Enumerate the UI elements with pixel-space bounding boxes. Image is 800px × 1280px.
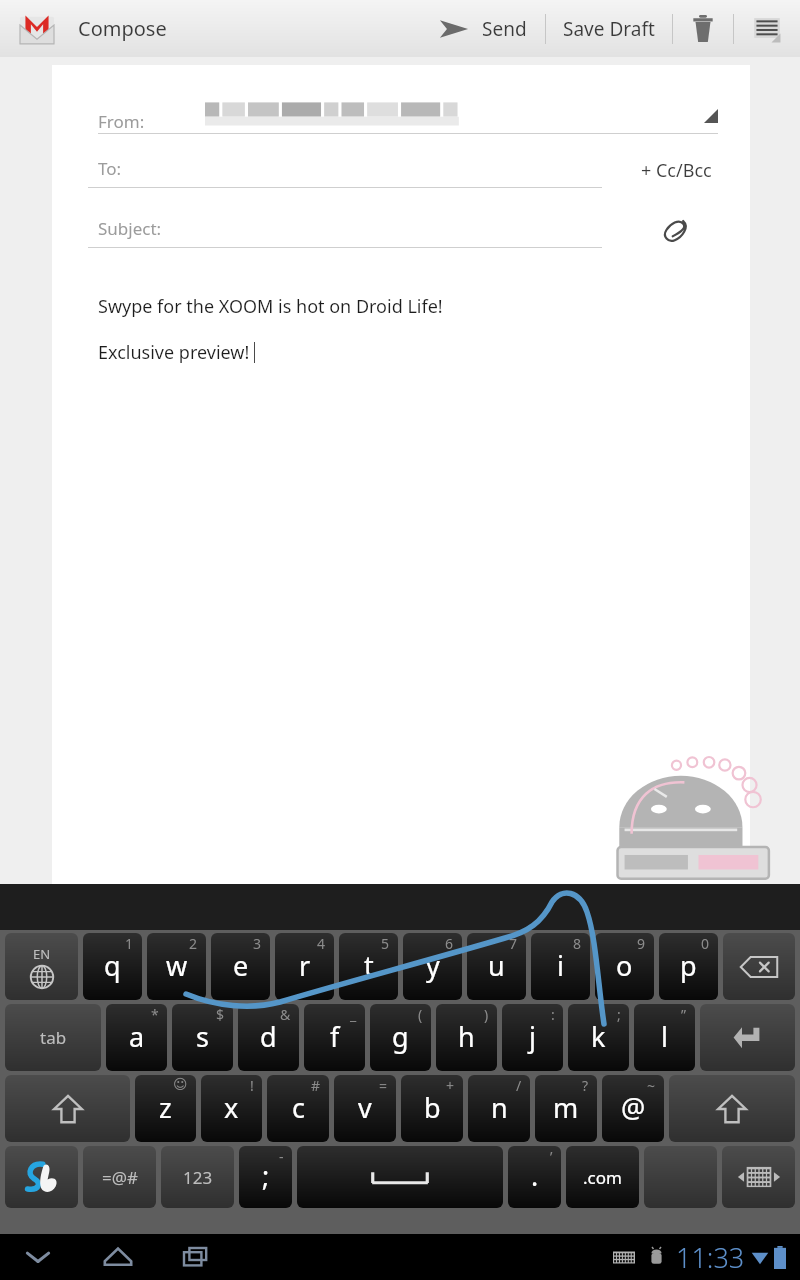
- staticText: Save Draft: [563, 16, 655, 42]
- staticText: a: [129, 1018, 145, 1055]
- staticText: 11:33: [676, 1239, 745, 1276]
- button[interactable]: ?: [535, 1075, 597, 1142]
- button[interactable]: More options: [734, 0, 800, 57]
- staticText: Send: [482, 16, 527, 42]
- staticText: _: [350, 1005, 357, 1024]
- button[interactable]: 2: [147, 933, 206, 1000]
- staticText: f: [330, 1018, 340, 1055]
- button[interactable]: Language: [5, 933, 78, 1000]
- button[interactable]: Hide keyboard: [722, 1146, 795, 1208]
- button[interactable]: Space: [297, 1146, 503, 1208]
- staticText: g: [392, 1018, 409, 1055]
- staticText: ;: [617, 1005, 621, 1024]
- button[interactable]: To:: [88, 157, 602, 188]
- button[interactable]: [644, 1146, 717, 1208]
- button[interactable]: /: [468, 1075, 530, 1142]
- staticText: ?: [582, 1076, 589, 1095]
- button[interactable]: Send: [424, 0, 545, 57]
- button[interactable]: Shift: [5, 1075, 130, 1142]
- button[interactable]: 0: [659, 933, 718, 1000]
- staticText: ~: [647, 1076, 656, 1095]
- staticText: o: [616, 947, 633, 984]
- button[interactable]: 8: [531, 933, 590, 1000]
- button[interactable]: ): [436, 1004, 497, 1071]
- button[interactable]: Discard draft: [673, 0, 733, 57]
- staticText: y: [426, 947, 440, 984]
- button[interactable]: 4: [275, 933, 334, 1000]
- button[interactable]: =@#: [83, 1146, 156, 1208]
- button[interactable]: Backspace: [723, 933, 795, 1000]
- staticText: z: [159, 1089, 172, 1126]
- button[interactable]: .com: [566, 1146, 639, 1208]
- button[interactable]: 7: [467, 933, 526, 1000]
- button[interactable]: ☺: [135, 1075, 196, 1142]
- button[interactable]: 3: [211, 933, 270, 1000]
- staticText: j: [529, 1018, 536, 1055]
- button[interactable]: Enter: [700, 1004, 795, 1071]
- staticText: q: [104, 947, 121, 984]
- staticText: s: [196, 1018, 209, 1055]
- staticText: e: [233, 947, 249, 984]
- staticText: =@#: [102, 1166, 138, 1189]
- button[interactable]: Back: [10, 1234, 66, 1280]
- staticText: ”: [681, 1005, 687, 1024]
- staticText: Subject:: [98, 217, 162, 240]
- button[interactable]: -: [239, 1146, 292, 1208]
- staticText: ☺: [173, 1076, 188, 1092]
- button[interactable]: 6: [403, 933, 462, 1000]
- button[interactable]: :: [502, 1004, 563, 1071]
- button[interactable]: $: [172, 1004, 233, 1071]
- button[interactable]: #: [267, 1075, 329, 1142]
- button[interactable]: 5: [339, 933, 398, 1000]
- staticText: =: [379, 1076, 388, 1095]
- button[interactable]: *: [106, 1004, 167, 1071]
- button[interactable]: Home: [90, 1234, 146, 1280]
- staticText: 5: [381, 934, 390, 953]
- staticText: r: [299, 947, 311, 984]
- button[interactable]: tab: [5, 1004, 101, 1071]
- staticText: m: [553, 1089, 579, 1126]
- button[interactable]: Recent apps: [168, 1234, 224, 1280]
- button[interactable]: ~: [602, 1075, 664, 1142]
- staticText: :: [551, 1005, 555, 1024]
- button[interactable]: Subject:: [88, 217, 602, 248]
- staticText: t: [364, 947, 374, 984]
- staticText: k: [591, 1018, 606, 1055]
- button[interactable]: 123: [161, 1146, 234, 1208]
- staticText: 1: [125, 934, 134, 953]
- staticText: *: [151, 1005, 159, 1024]
- button[interactable]: 9: [595, 933, 654, 1000]
- staticText: x: [224, 1089, 239, 1126]
- button[interactable]: Shift: [669, 1075, 795, 1142]
- staticText: EN: [33, 945, 51, 963]
- staticText: &: [280, 1005, 291, 1024]
- button[interactable]: +: [401, 1075, 463, 1142]
- button[interactable]: !: [201, 1075, 262, 1142]
- button[interactable]: Gmail, navigate up: [16, 8, 58, 50]
- button[interactable]: + Cc/Bcc: [602, 152, 750, 188]
- button[interactable]: ’: [508, 1146, 561, 1208]
- staticText: u: [488, 947, 505, 984]
- staticText: 8: [573, 934, 582, 953]
- button[interactable]: From:: [98, 99, 718, 134]
- staticText: v: [358, 1089, 372, 1126]
- button[interactable]: Swype: [5, 1146, 78, 1208]
- button[interactable]: &: [238, 1004, 299, 1071]
- button[interactable]: =: [334, 1075, 396, 1142]
- button[interactable]: (: [370, 1004, 431, 1071]
- staticText: @: [621, 1089, 646, 1126]
- button[interactable]: ;: [568, 1004, 629, 1071]
- staticText: -: [279, 1147, 284, 1166]
- button[interactable]: ”: [634, 1004, 695, 1071]
- staticText: ’: [550, 1147, 553, 1166]
- button[interactable]: 1: [83, 933, 142, 1000]
- staticText: Exclusive preview!: [98, 340, 250, 365]
- button[interactable]: Swype for the XOOM is hot on Droid Life!: [98, 294, 718, 365]
- staticText: n: [491, 1089, 508, 1126]
- button[interactable]: Save Draft: [546, 0, 672, 57]
- staticText: ;: [262, 1157, 270, 1194]
- button[interactable]: [602, 212, 750, 248]
- staticText: .: [531, 1157, 539, 1194]
- button[interactable]: _: [304, 1004, 365, 1071]
- staticText: (: [418, 1005, 423, 1024]
